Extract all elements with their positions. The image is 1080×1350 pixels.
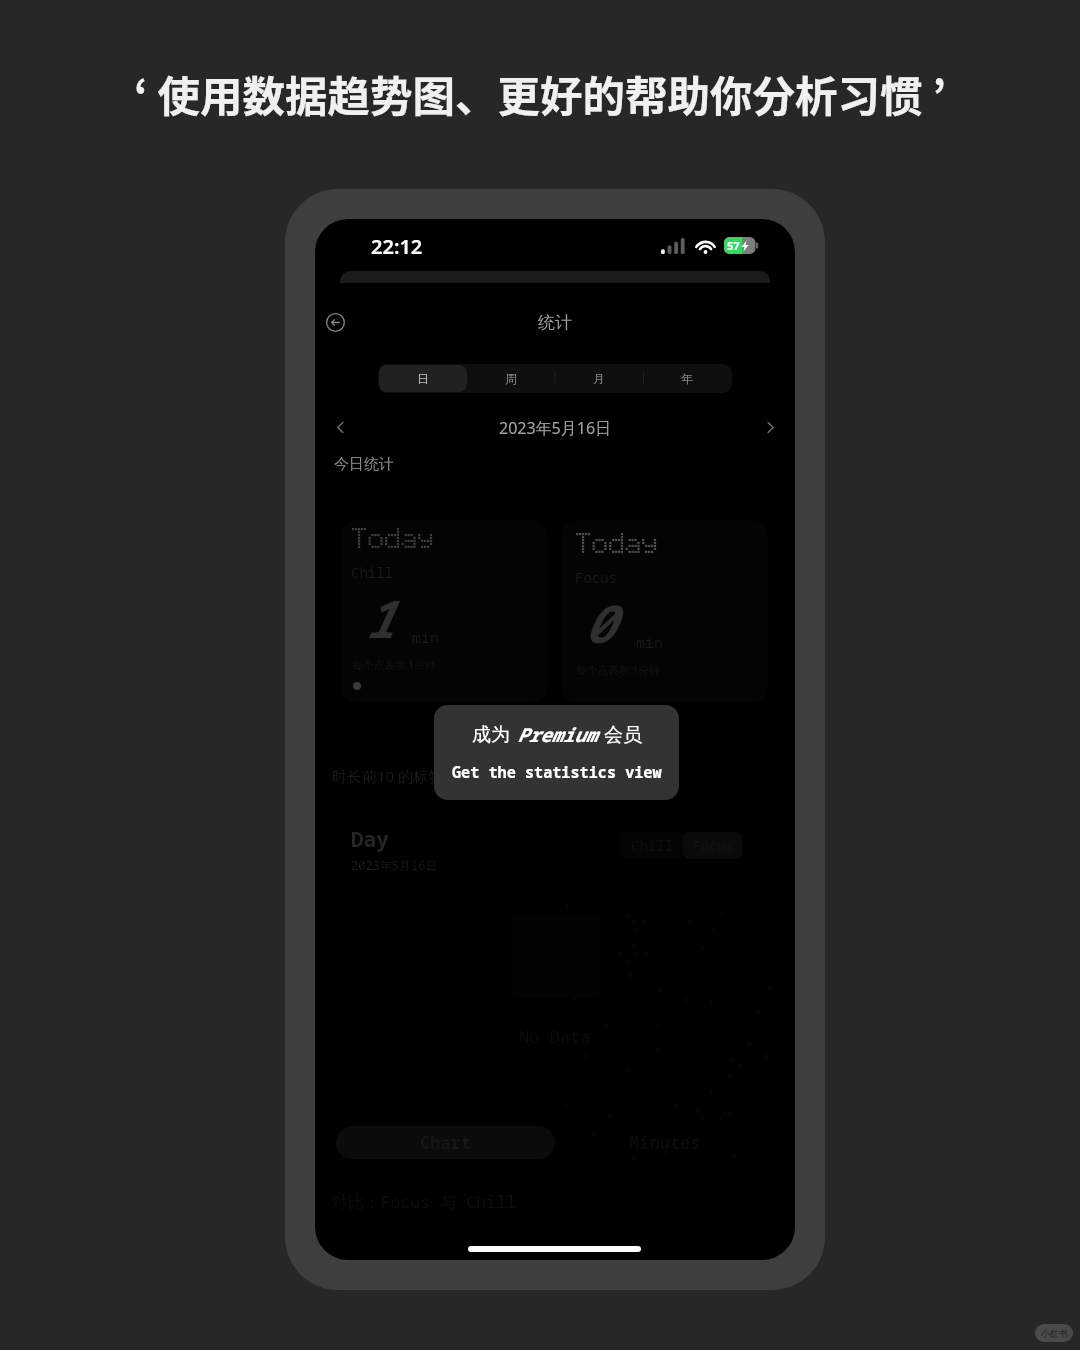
staticText: 周: [505, 371, 517, 386]
staticText: 对比：Focus 与 Chill: [331, 1190, 516, 1213]
staticText: 每个点表示 1分钟: [352, 658, 436, 673]
staticText: ‘ 使用数据趋势图、更好的帮助你分析习惯 ’: [134, 63, 946, 125]
staticText: 统计: [538, 312, 572, 333]
staticText: 2023年5月16日: [499, 417, 612, 439]
button[interactable]: 日: [379, 365, 467, 392]
staticText: Premium: [517, 722, 597, 748]
button[interactable]: Previous day: [328, 415, 352, 439]
staticText: 0: [583, 587, 615, 658]
staticText: Chart: [420, 1131, 471, 1154]
staticText: Day: [351, 825, 389, 854]
button[interactable]: Back: [323, 310, 347, 334]
staticText: 57: [727, 238, 740, 253]
button[interactable]: Chill: [341, 520, 548, 703]
staticText: 22:12: [371, 233, 423, 260]
staticText: Chill: [631, 836, 673, 855]
staticText: 1: [363, 582, 395, 653]
staticText: 会员: [604, 723, 642, 747]
staticText: Get the statistics view: [452, 762, 662, 783]
staticText: Focus: [575, 568, 617, 587]
staticText: min: [412, 627, 440, 647]
staticText: 时长前10 的标签: [332, 766, 444, 786]
staticText: 成为: [472, 723, 510, 747]
button[interactable]: 年: [643, 365, 731, 392]
button[interactable]: 月: [555, 365, 643, 392]
button[interactable]: Focus: [561, 520, 768, 703]
button[interactable]: Next day: [758, 415, 782, 439]
staticText: Chill: [351, 563, 393, 582]
staticText: 小红书: [1041, 1328, 1068, 1339]
staticText: 年: [681, 371, 693, 386]
staticText: 2023年5月16日: [351, 857, 438, 873]
staticText: 今日统计: [334, 455, 394, 474]
button[interactable]: 成为: [434, 705, 679, 800]
staticText: 月: [593, 371, 605, 386]
staticText: Minutes: [629, 1131, 701, 1154]
staticText: 每个点表示 1分钟: [576, 663, 660, 678]
staticText: 日: [417, 371, 429, 386]
staticText: min: [636, 632, 664, 652]
button[interactable]: 周: [467, 365, 555, 392]
